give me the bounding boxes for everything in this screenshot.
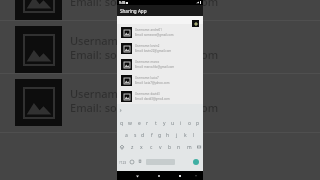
staticText: Email: lucia7@yahoo.com [135,81,170,85]
button[interactable]: u [169,117,177,129]
staticText: p [196,120,200,127]
button[interactable]: c [147,141,155,153]
staticText: Email: someone@gmail.com [70,47,219,62]
button[interactable]: a [122,129,130,141]
staticText: Email: david3@gmail.com [135,97,170,101]
button[interactable]: w [126,117,134,129]
staticText: Username: marco [135,60,160,64]
staticText: Username: andre01 [70,33,174,48]
staticText: b [168,144,172,151]
button[interactable]: q [118,117,126,129]
button[interactable]: x [137,141,145,153]
staticText: r [146,120,149,127]
button[interactable]: Username: marco [117,56,203,72]
staticText: i [180,120,182,127]
button[interactable]: Send [193,159,199,165]
button[interactable]: j [173,129,181,141]
staticText: Username: kevin2 [135,44,160,48]
staticText: a [125,132,128,139]
button[interactable]: Hide keyboard [193,173,199,179]
staticText: j [176,132,178,139]
button[interactable]: Back [134,173,140,179]
button[interactable]: m [185,141,193,153]
staticText: Username: andre01 [70,86,174,101]
button[interactable]: y [160,117,168,129]
button[interactable]: r [143,117,151,129]
staticText: Sharing App [120,8,147,14]
button[interactable]: z [128,141,136,153]
button[interactable]: i [177,117,185,129]
button[interactable]: o [186,117,194,129]
button[interactable]: Voice input [136,153,144,171]
staticText: Email: someone@gmail.com [70,0,219,9]
staticText: Email: someone@gmail.com [70,100,219,115]
button[interactable]: k [181,129,189,141]
button[interactable]: Username: david3 [117,88,203,104]
staticText: Username: andre01 [135,28,162,32]
staticText: Email: marco.fdz@gmail.com [135,65,175,69]
button[interactable]: v [156,141,164,153]
button[interactable]: l [190,129,198,141]
button[interactable]: f [148,129,156,141]
button[interactable]: n [175,141,183,153]
button[interactable]: h [164,129,172,141]
staticText: v [159,144,162,151]
button[interactable]: e [135,117,143,129]
button[interactable]: p [194,117,202,129]
staticText: m [187,144,192,151]
staticText: q [120,120,124,127]
button[interactable]: Username: kevin2 [117,40,203,56]
staticText: h [166,132,170,139]
staticText: c [150,144,153,151]
staticText: t [155,120,157,127]
staticText: Email: someone@gmail.com [135,33,174,37]
button[interactable]: s [131,129,139,141]
button[interactable]: Home [156,173,162,179]
button[interactable]: Emoji [128,153,136,171]
staticText: d [141,132,145,139]
button[interactable]: Recents [177,173,183,179]
button[interactable]: ?123 [117,153,128,171]
button[interactable]: Username: andre01 [117,24,203,40]
staticText: Username: lucia7 [135,76,159,80]
button[interactable]: t [152,117,160,129]
staticText: k [184,132,187,139]
staticText: x [140,144,143,151]
staticText: g [158,132,162,139]
staticText: 9:35 [119,1,126,5]
button[interactable]: b [166,141,174,153]
staticText: ?123 [119,160,127,165]
button[interactable]: New message [192,20,199,27]
staticText: w [128,120,132,127]
staticText: f [151,132,153,139]
staticText: z [131,144,134,151]
button[interactable]: d [139,129,147,141]
staticText: e [138,120,141,127]
staticText: y [163,120,166,127]
staticText: Email: kevin22@gmail.com [135,49,172,53]
staticText: n [177,144,181,151]
button[interactable]: Shift [117,141,126,153]
staticText: o [188,120,192,127]
button[interactable]: g [156,129,164,141]
button[interactable]: Backspace [194,141,203,153]
staticText: l [193,132,195,139]
button[interactable]: Username: lucia7 [117,72,203,88]
staticText: Username: david3 [135,92,160,96]
staticText: u [171,120,175,127]
staticText: s [134,132,137,139]
